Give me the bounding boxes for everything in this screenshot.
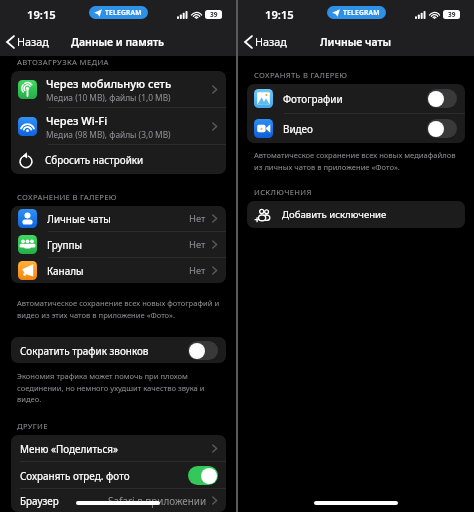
staticText: Группы bbox=[47, 238, 189, 251]
staticText: ИСКЛЮЧЕНИЯ bbox=[254, 187, 312, 197]
button[interactable]: Личные чаты bbox=[11, 206, 226, 231]
staticText: Safari в приложении bbox=[108, 494, 207, 507]
button[interactable]: Добавить исключение bbox=[247, 201, 465, 228]
staticText: Экономия трафика может помочь при плохом… bbox=[17, 371, 222, 404]
staticText: Назад bbox=[255, 34, 287, 49]
staticText: Каналы bbox=[47, 264, 189, 277]
staticText: Личные чаты bbox=[47, 212, 189, 225]
button[interactable]: Toggle on bbox=[188, 466, 218, 485]
button[interactable]: Через Wi-Fi bbox=[11, 108, 226, 144]
button[interactable]: Telegram live activity bbox=[327, 6, 386, 19]
staticText: Личные чаты bbox=[320, 35, 392, 49]
button[interactable]: Каналы bbox=[11, 258, 226, 283]
staticText: СОХРАНЕНИЕ В ГАЛЕРЕЮ bbox=[17, 192, 117, 202]
staticText: Автоматическое сохранение всех новых фот… bbox=[17, 298, 222, 320]
staticText: Нет bbox=[189, 238, 206, 251]
staticText: Через мобильную сеть bbox=[46, 76, 172, 91]
staticText: Через Wi-Fi bbox=[46, 113, 108, 128]
staticText: Нет bbox=[189, 212, 206, 225]
staticText: Сбросить настройки bbox=[45, 153, 144, 166]
staticText: Автоматическое сохранение всех новых мед… bbox=[254, 150, 464, 172]
button[interactable]: Сбросить настройки bbox=[11, 145, 226, 174]
staticText: Видео bbox=[283, 122, 427, 135]
staticText: Нет bbox=[189, 264, 206, 277]
button[interactable]: Браузер bbox=[11, 489, 226, 512]
staticText: Сократить трафик звонков bbox=[20, 344, 188, 357]
staticText: Меню «Поделиться» bbox=[20, 442, 212, 455]
button[interactable]: Назад bbox=[238, 31, 293, 52]
staticText: Медиа (98 MB), файлы (3,0 MB) bbox=[46, 129, 171, 140]
staticText: Браузер bbox=[20, 494, 108, 507]
button[interactable]: Через мобильную сеть bbox=[11, 71, 226, 107]
button[interactable]: Группы bbox=[11, 232, 226, 257]
button[interactable]: Меню «Поделиться» bbox=[11, 435, 226, 461]
staticText: 19:15 bbox=[265, 7, 294, 22]
button[interactable]: Видео bbox=[247, 114, 465, 143]
staticText: TELEGRAM bbox=[343, 8, 380, 17]
button[interactable]: Назад bbox=[0, 31, 55, 52]
staticText: Медиа (10 MB), файлы (1,0 MB) bbox=[46, 92, 171, 103]
staticText: АВТОЗАГРУЗКА МЕДИА bbox=[17, 57, 109, 67]
button[interactable]: Toggle off bbox=[427, 89, 457, 108]
staticText: 19:15 bbox=[27, 7, 56, 22]
button[interactable]: Toggle off bbox=[427, 119, 457, 138]
staticText: TELEGRAM bbox=[105, 8, 142, 17]
staticText: Сохранять отред. фото bbox=[20, 469, 188, 482]
staticText: СОХРАНЯТЬ В ГАЛЕРЕЮ bbox=[254, 70, 348, 80]
button[interactable]: Toggle off bbox=[188, 341, 218, 360]
button[interactable]: Фотографии bbox=[247, 84, 465, 113]
button[interactable]: Telegram live activity bbox=[89, 6, 148, 19]
button[interactable]: Сократить трафик звонков bbox=[11, 337, 226, 363]
button[interactable]: Сохранять отред. фото bbox=[11, 462, 226, 488]
staticText: ДРУГИЕ bbox=[17, 421, 48, 431]
staticText: Добавить исключение bbox=[282, 208, 387, 221]
staticText: Данные и память bbox=[71, 35, 165, 49]
staticText: 39 bbox=[210, 10, 218, 19]
staticText: 39 bbox=[448, 10, 456, 19]
staticText: Фотографии bbox=[283, 92, 427, 105]
staticText: Назад bbox=[17, 34, 49, 49]
